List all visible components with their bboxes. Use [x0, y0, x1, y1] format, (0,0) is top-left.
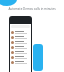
button[interactable] [10, 50, 31, 55]
button[interactable] [10, 40, 31, 45]
button[interactable] [10, 60, 31, 65]
staticText: Automate Demos calls in minutes [0, 7, 64, 11]
button[interactable] [10, 45, 31, 50]
button[interactable] [10, 30, 31, 35]
button[interactable] [10, 55, 31, 60]
button[interactable] [10, 35, 31, 40]
